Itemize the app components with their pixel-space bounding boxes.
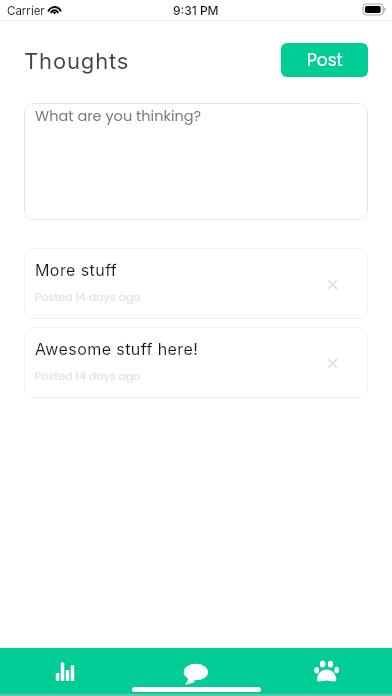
button[interactable]: Delete thought: [319, 350, 345, 376]
button[interactable]: Awesome stuff here!: [24, 327, 368, 398]
button[interactable]: What are you thinking?: [24, 103, 368, 220]
button[interactable]: Stats: [0, 648, 130, 694]
button[interactable]: Thoughts: [130, 648, 261, 694]
button[interactable]: Delete thought: [319, 271, 345, 297]
button[interactable]: Post: [281, 43, 368, 77]
staticText: Post: [307, 48, 343, 72]
staticText: Posted 14 days ago: [35, 289, 141, 304]
staticText: More stuff: [35, 260, 118, 279]
staticText: Awesome stuff here!: [35, 339, 199, 358]
staticText: What are you thinking?: [35, 106, 202, 126]
button[interactable]: Pets: [261, 648, 392, 694]
staticText: Thoughts: [24, 48, 130, 75]
button[interactable]: More stuff: [24, 248, 368, 319]
staticText: Posted 14 days ago: [35, 368, 141, 383]
staticText: 9:31 PM: [173, 3, 219, 18]
staticText: Carrier: [7, 4, 45, 18]
